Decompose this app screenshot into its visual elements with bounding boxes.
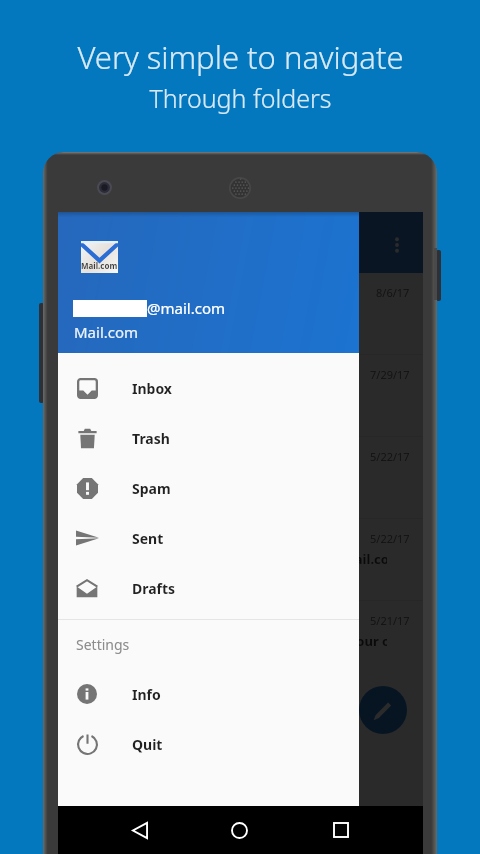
- button[interactable]: Home: [220, 811, 258, 849]
- staticText: Top stories for you today: [107, 386, 387, 404]
- staticText: Mail.com Team: [123, 282, 228, 301]
- button[interactable]: Spam: [58, 463, 359, 513]
- staticText: Inbox: [132, 379, 172, 398]
- staticText: 5/22/17: [370, 449, 410, 464]
- button[interactable]: Mail.com Team: [58, 273, 423, 354]
- staticText: Your account is ready: [107, 468, 387, 486]
- staticText: Get the most out of your brand new mail.…: [107, 550, 387, 568]
- staticText: 5/22/17: [370, 531, 410, 546]
- button[interactable]: Drafts: [58, 563, 359, 613]
- button[interactable]: Team: [58, 519, 423, 600]
- staticText: Learn here how you can easily set up you…: [107, 632, 387, 650]
- staticText: Settings: [76, 635, 130, 654]
- staticText: Quit: [132, 735, 163, 754]
- button[interactable]: mail.com: [58, 437, 423, 518]
- staticText: Info: [132, 685, 161, 704]
- staticText: Spam: [132, 479, 171, 498]
- button[interactable]: Sent: [58, 513, 359, 563]
- staticText: @mail.com: [147, 298, 225, 318]
- staticText: Trash: [132, 429, 170, 448]
- staticText: Mail.com: [81, 260, 118, 271]
- staticText: Through folders: [149, 81, 332, 115]
- staticText: Welcome to mail.com: [110, 304, 390, 322]
- button[interactable]: More options: [382, 230, 412, 260]
- button[interactable]: News Digest: [58, 355, 423, 436]
- staticText: Sent: [132, 529, 164, 548]
- button[interactable]: Compose: [359, 686, 407, 734]
- button[interactable]: Trash: [58, 413, 359, 463]
- staticText: mail.com: [123, 610, 187, 629]
- button[interactable]: Info: [58, 669, 359, 719]
- staticText: Very simple to navigate: [77, 36, 404, 78]
- staticText: 5/21/17: [370, 613, 410, 628]
- staticText: Team: [123, 528, 161, 547]
- staticText: Drafts: [132, 579, 176, 598]
- button[interactable]: mail.com: [58, 601, 423, 682]
- button[interactable]: Quit: [58, 719, 359, 769]
- button[interactable]: Inbox: [58, 363, 359, 413]
- button[interactable]: Back: [121, 811, 159, 849]
- button[interactable]: Recent apps: [322, 811, 360, 849]
- staticText: 8/6/17: [376, 285, 410, 300]
- staticText: Mail.com: [74, 322, 139, 342]
- staticText: 7/29/17: [370, 367, 410, 382]
